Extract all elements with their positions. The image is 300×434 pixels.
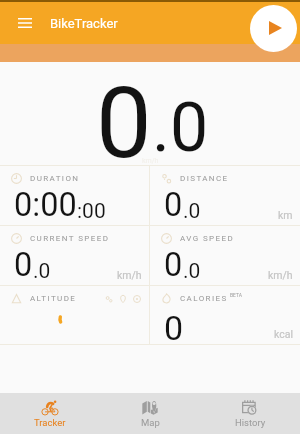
button[interactable]: History — [200, 393, 300, 434]
staticText: DURATION — [30, 174, 80, 183]
staticText: 0:00 — [14, 186, 77, 224]
staticText: .0 — [152, 88, 209, 168]
staticText: 0 — [14, 246, 33, 284]
staticText: km/h — [117, 269, 142, 281]
button[interactable]: Map — [100, 393, 200, 434]
staticText: :00 — [77, 199, 106, 224]
staticText: ALTITUDE — [30, 294, 77, 303]
staticText: .0 — [183, 199, 201, 224]
staticText: Tracker — [34, 417, 66, 428]
staticText: km/h — [268, 269, 293, 281]
staticText: CURRENT SPEED — [30, 234, 110, 243]
staticText: km/h — [142, 157, 159, 165]
staticText: Map — [141, 417, 160, 428]
button[interactable]: Tracker — [0, 393, 100, 434]
staticText: History — [235, 417, 266, 428]
button[interactable]: Open navigation menu — [11, 9, 39, 37]
staticText: .0 — [183, 259, 201, 284]
staticText: BikeTracker — [50, 16, 118, 31]
staticText: AVG SPEED — [180, 234, 235, 243]
staticText: BETA — [230, 292, 243, 298]
staticText: .0 — [33, 259, 51, 284]
staticText: 0 — [164, 308, 184, 348]
staticText: 0 — [164, 246, 183, 284]
staticText: kcal — [274, 328, 293, 340]
button[interactable]: Start ride — [250, 5, 297, 52]
staticText: km — [278, 209, 293, 221]
staticText: 0 — [96, 65, 152, 168]
staticText: CALORIES — [180, 294, 228, 303]
staticText: 0 — [164, 186, 183, 224]
staticText: DISTANCE — [180, 174, 229, 183]
